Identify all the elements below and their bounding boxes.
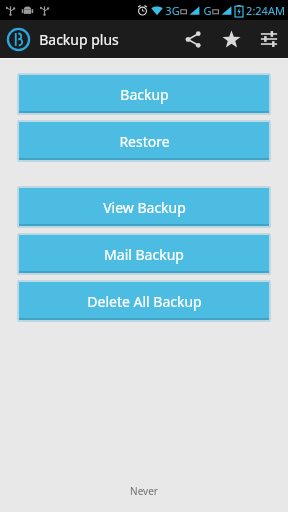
button[interactable]: Favorite bbox=[212, 20, 250, 58]
button[interactable]: Delete All Backup bbox=[19, 282, 269, 320]
staticText: Never bbox=[130, 484, 158, 498]
staticText: Restore bbox=[119, 132, 170, 151]
staticText: Mail Backup bbox=[104, 245, 184, 264]
button[interactable]: Backup bbox=[19, 75, 269, 113]
button[interactable]: View Backup bbox=[19, 188, 269, 226]
staticText: 2:24AM bbox=[246, 3, 285, 18]
staticText: View Backup bbox=[103, 198, 186, 217]
staticText: Backup plus bbox=[39, 30, 119, 49]
button[interactable]: Mail Backup bbox=[19, 235, 269, 273]
staticText: Backup bbox=[120, 85, 169, 104]
staticText: Delete All Backup bbox=[87, 292, 202, 311]
button[interactable]: Settings bbox=[250, 20, 288, 58]
button[interactable]: Share bbox=[174, 20, 212, 58]
staticText: G bbox=[203, 3, 212, 18]
button[interactable]: Restore bbox=[19, 122, 269, 160]
staticText: 3G bbox=[165, 3, 180, 18]
